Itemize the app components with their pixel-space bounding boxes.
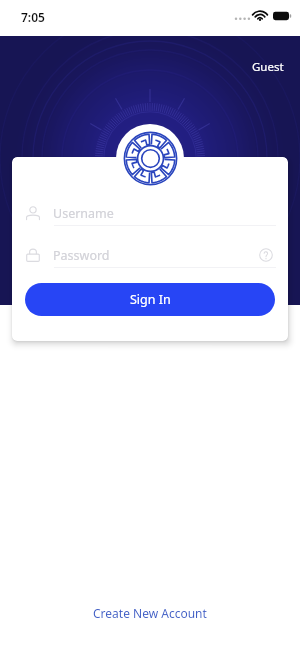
staticText: Guest <box>252 59 284 75</box>
staticText: Sign In <box>130 291 171 308</box>
staticText: 7:05 <box>21 9 45 25</box>
button[interactable]: Guest <box>250 56 286 78</box>
button[interactable]: Forgot password help <box>259 248 273 262</box>
button[interactable]: Create New Account <box>85 601 215 625</box>
staticText: Create New Account <box>93 605 207 621</box>
button[interactable]: Password <box>12 243 288 267</box>
staticText: Username <box>53 205 114 222</box>
button[interactable]: Username <box>12 201 288 225</box>
button[interactable]: Sign In <box>25 283 275 316</box>
staticText: Password <box>53 247 110 264</box>
